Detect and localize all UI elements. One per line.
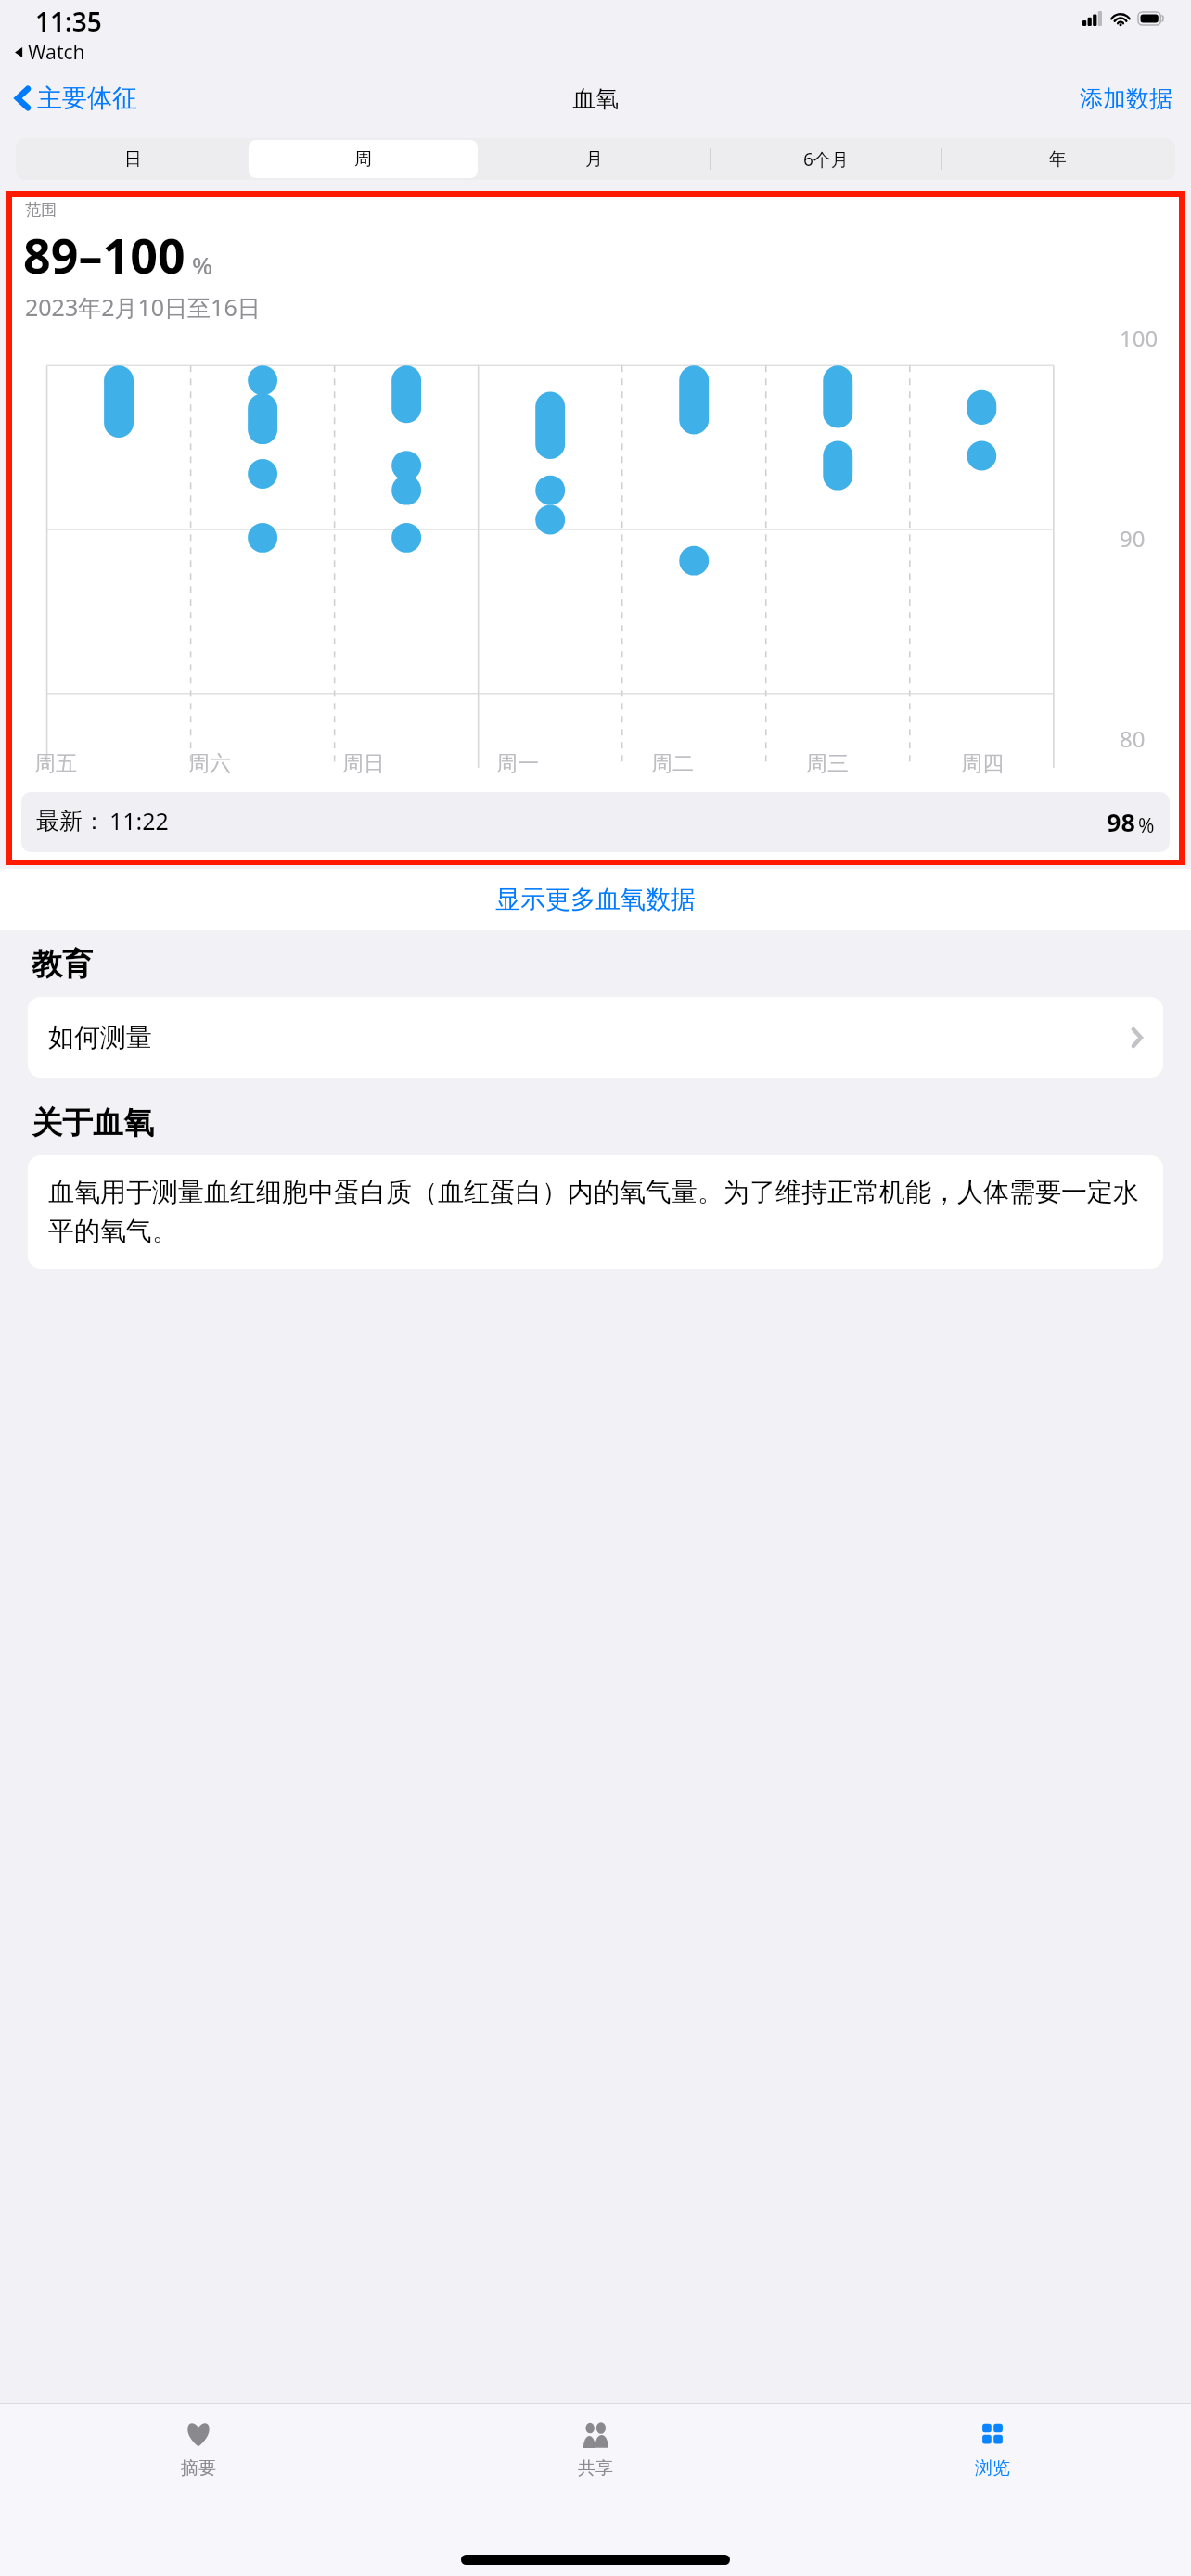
- staticText: 摘要: [181, 2457, 216, 2480]
- staticText: 80: [1120, 723, 1146, 754]
- button[interactable]: 年: [943, 140, 1172, 178]
- staticText: 最新：: [36, 807, 106, 835]
- button[interactable]: 主要体征: [15, 83, 137, 114]
- button[interactable]: 周: [249, 140, 478, 178]
- staticText: 教育: [32, 945, 93, 984]
- staticText: 周五: [34, 750, 77, 777]
- staticText: 周六: [188, 750, 231, 777]
- staticText: 月: [585, 148, 603, 171]
- staticText: 关于血氧: [32, 1103, 154, 1142]
- staticText: 周二: [651, 750, 694, 777]
- staticText: 日: [124, 148, 142, 171]
- staticText: 浏览: [975, 2457, 1010, 2480]
- button[interactable]: 最新：: [21, 792, 1170, 852]
- staticText: 98: [1107, 805, 1135, 839]
- staticText: 主要体征: [37, 83, 137, 114]
- staticText: 周一: [496, 750, 539, 777]
- staticText: 6个月: [803, 147, 849, 172]
- staticText: 周: [354, 148, 372, 171]
- staticText: 范围: [25, 200, 57, 220]
- button[interactable]: 显示更多血氧数据: [0, 869, 1191, 930]
- staticText: 2023年2月10日至16日: [25, 291, 261, 323]
- button[interactable]: 日: [19, 140, 247, 178]
- button[interactable]: 如何测量: [28, 997, 1163, 1078]
- button[interactable]: 6个月: [711, 140, 941, 178]
- button[interactable]: 浏览: [794, 2415, 1191, 2543]
- staticText: 周四: [961, 750, 1004, 777]
- staticText: 血氧用于测量血红细胞中蛋白质（血红蛋白）内的氧气量。为了维持正常机能，人体需要一…: [48, 1176, 1143, 1248]
- button[interactable]: 摘要: [0, 2415, 397, 2543]
- staticText: 血氧: [572, 84, 619, 113]
- button[interactable]: 血氧用于测量血红细胞中蛋白质（血红蛋白）内的氧气量。为了维持正常机能，人体需要一…: [28, 1155, 1163, 1269]
- staticText: 共享: [578, 2457, 613, 2480]
- staticText: 如何测量: [48, 1021, 152, 1053]
- staticText: 89–100: [23, 222, 186, 287]
- staticText: 11:22: [109, 805, 169, 836]
- staticText: %: [192, 249, 213, 281]
- staticText: %: [1138, 812, 1155, 839]
- button[interactable]: 月: [480, 140, 709, 178]
- staticText: 100: [1120, 323, 1159, 353]
- button[interactable]: 添加数据: [1080, 84, 1172, 113]
- staticText: 显示更多血氧数据: [495, 884, 696, 915]
- staticText: 周日: [342, 750, 385, 777]
- button[interactable]: 共享: [397, 2415, 794, 2543]
- staticText: 周三: [806, 750, 849, 777]
- button[interactable]: Watch: [13, 39, 85, 66]
- staticText: 90: [1120, 523, 1146, 554]
- staticText: 年: [1049, 148, 1067, 171]
- staticText: 11:35: [35, 4, 102, 39]
- staticText: Watch: [28, 39, 85, 66]
